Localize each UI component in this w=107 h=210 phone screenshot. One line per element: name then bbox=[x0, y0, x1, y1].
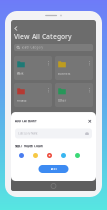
staticText: ADD CATEGORY bbox=[15, 119, 37, 123]
button[interactable]: Folder colour bbox=[47, 153, 52, 158]
button[interactable]: SAVE bbox=[38, 165, 68, 173]
button[interactable]: Other bbox=[55, 83, 93, 107]
staticText: Finance bbox=[17, 99, 27, 102]
button[interactable]: Close bbox=[87, 118, 93, 124]
staticText: SELECT FOLDER COLOR bbox=[15, 144, 43, 148]
staticText: Business bbox=[58, 72, 70, 75]
staticText: SAVE bbox=[50, 167, 56, 171]
staticText: Work bbox=[17, 72, 23, 75]
button[interactable]: Business bbox=[55, 56, 93, 80]
button[interactable]: Folder colour bbox=[61, 153, 66, 158]
button[interactable]: Finance bbox=[14, 83, 52, 107]
staticText: Other bbox=[58, 99, 66, 102]
button[interactable]: Back bbox=[11, 24, 20, 32]
button[interactable]: Folder colour bbox=[19, 153, 24, 158]
button[interactable]: Folder colour bbox=[75, 153, 80, 158]
button[interactable]: Folder colour bbox=[33, 153, 38, 158]
button[interactable]: Search Category bbox=[14, 44, 93, 51]
staticText: Search Category bbox=[22, 46, 43, 49]
button[interactable]: Work bbox=[14, 56, 52, 80]
staticText: Category Name bbox=[18, 132, 38, 135]
staticText: View All Category bbox=[14, 32, 72, 41]
